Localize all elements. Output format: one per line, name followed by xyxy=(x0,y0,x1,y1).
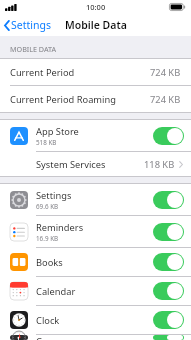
button[interactable]: Reminders xyxy=(0,216,191,247)
button[interactable]: Settings xyxy=(0,16,57,34)
button[interactable]: App Store mobile data on xyxy=(153,127,184,145)
staticText: 518 KB xyxy=(36,138,57,147)
staticText: Mobile Data xyxy=(65,18,127,32)
staticText: Settings xyxy=(11,18,51,32)
button[interactable]: Clock xyxy=(0,306,191,334)
staticText: Current Period Roaming xyxy=(10,93,116,106)
staticText: MOBILE DATA xyxy=(10,44,57,54)
button[interactable]: Books mobile data on xyxy=(153,253,184,271)
staticText: Compass xyxy=(36,335,77,340)
staticText: Settings xyxy=(36,189,72,202)
button[interactable]: Calendar xyxy=(0,277,191,305)
staticText: 16.9 KB xyxy=(36,234,59,243)
button[interactable]: Compass mobile data on xyxy=(153,335,184,340)
button[interactable]: System Services xyxy=(0,152,191,176)
staticText: 118 KB xyxy=(144,158,175,171)
button[interactable]: App Store xyxy=(0,120,191,151)
button[interactable]: Reminders mobile data on xyxy=(153,223,184,241)
button[interactable]: Current Period xyxy=(0,59,191,85)
button[interactable]: Books xyxy=(0,248,191,276)
staticText: Calendar xyxy=(36,285,76,298)
staticText: Clock xyxy=(36,314,60,327)
button[interactable]: Clock mobile data on xyxy=(153,311,184,329)
button[interactable]: Current Period Roaming xyxy=(0,86,191,112)
staticText: Reminders xyxy=(36,221,84,234)
staticText: 724 KB xyxy=(150,66,181,79)
staticText: Books xyxy=(36,256,63,269)
staticText: App Store xyxy=(36,125,79,138)
staticText: 69.6 KB xyxy=(36,202,59,211)
button[interactable]: Calendar mobile data on xyxy=(153,282,184,300)
staticText: 10:00 xyxy=(86,2,106,12)
button[interactable]: Settings mobile data on xyxy=(153,191,184,209)
button[interactable]: Compass xyxy=(0,335,191,340)
staticText: System Services xyxy=(36,158,106,171)
button[interactable]: Settings xyxy=(0,184,191,215)
staticText: 724 KB xyxy=(150,93,181,106)
staticText: Current Period xyxy=(10,66,75,79)
